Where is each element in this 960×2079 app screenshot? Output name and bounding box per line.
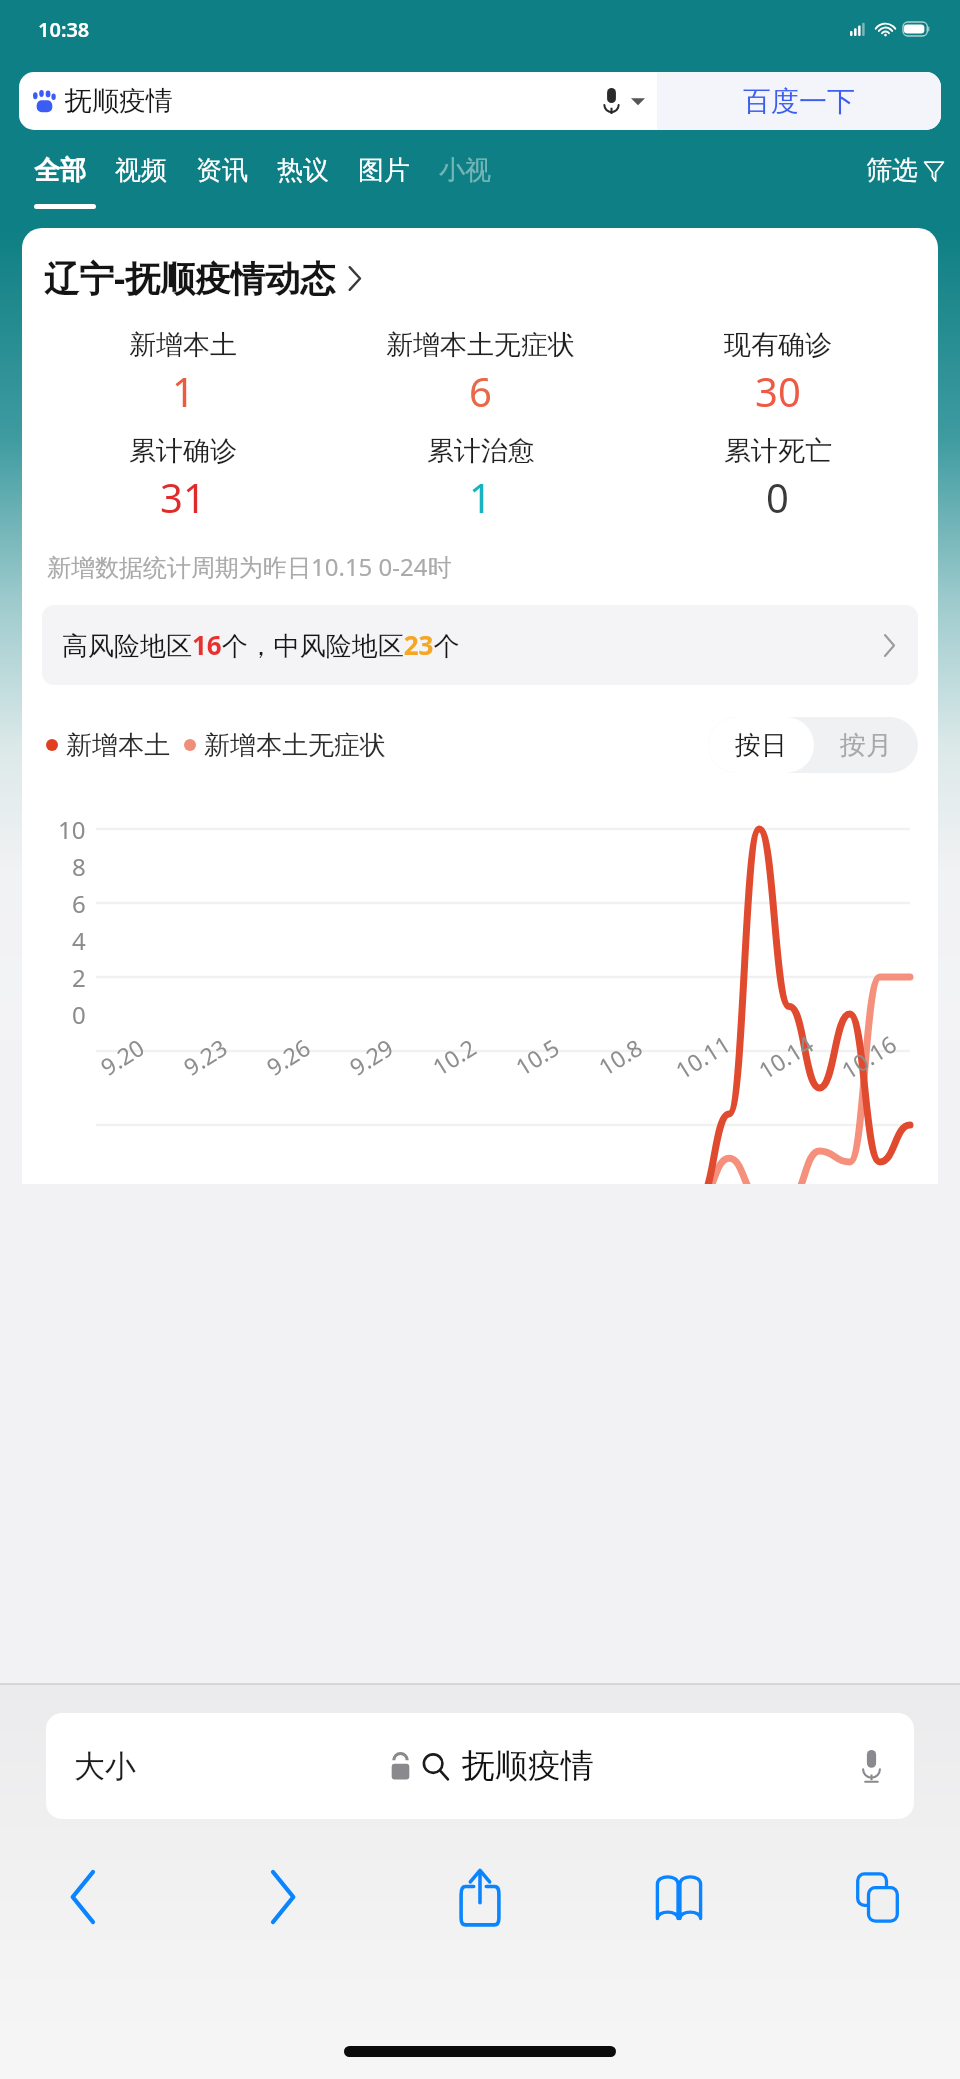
button[interactable]: 新增本土 — [34, 328, 332, 418]
button[interactable]: 语音输入 — [848, 1743, 894, 1789]
staticText: 2 — [72, 961, 86, 994]
staticText: 热议 — [277, 154, 329, 187]
button[interactable]: 按月 — [814, 717, 918, 773]
staticText: 按月 — [840, 729, 892, 762]
staticText: 10.8 — [592, 1031, 648, 1082]
staticText: 10.14 — [752, 1028, 819, 1085]
staticText: 抚顺疫情 — [65, 84, 173, 118]
button[interactable]: 后退 — [28, 1849, 138, 1945]
staticText: 10.11 — [669, 1028, 736, 1085]
staticText: 10.5 — [509, 1031, 565, 1082]
staticText: 视频 — [115, 154, 167, 187]
button[interactable]: 百度一下 — [657, 72, 941, 130]
staticText: 9.29 — [343, 1031, 399, 1082]
button[interactable]: 累计治愈 — [332, 434, 629, 524]
staticText: 1 — [469, 470, 492, 524]
staticText: 全部 — [34, 154, 86, 187]
staticText: 1 — [172, 364, 195, 418]
staticText: 0 — [72, 998, 86, 1031]
staticText: 高风险地区16个，中风险地区23个 — [62, 627, 460, 663]
staticText: 8 — [72, 850, 86, 883]
button[interactable]: 大小 — [74, 1747, 136, 1786]
staticText: 6 — [72, 887, 86, 920]
button[interactable]: 现有确诊 — [629, 328, 926, 418]
staticText: 新增数据统计周期为昨日10.15 0-24时 — [47, 550, 452, 583]
staticText: 10:38 — [38, 16, 90, 43]
staticText: 10 — [58, 813, 86, 846]
staticText: 图片 — [358, 154, 410, 187]
staticText: 新增本土无症状 — [386, 328, 575, 362]
staticText: 累计治愈 — [427, 434, 535, 468]
staticText: 9.20 — [94, 1031, 150, 1082]
staticText: 0 — [766, 470, 789, 524]
button[interactable]: 按日 — [708, 717, 814, 773]
button[interactable]: 累计死亡 — [629, 434, 926, 524]
staticText: 30 — [755, 364, 801, 418]
button[interactable]: 新增本土无症状 — [332, 328, 629, 418]
button[interactable]: 语音搜索 — [591, 81, 631, 121]
staticText: 累计死亡 — [724, 434, 832, 468]
staticText: 10.16 — [835, 1028, 902, 1085]
staticText: 资讯 — [196, 154, 248, 187]
staticText: 6 — [469, 364, 492, 418]
staticText: 4 — [72, 924, 86, 957]
staticText: 现有确诊 — [724, 328, 832, 362]
button[interactable]: 资讯 — [196, 154, 248, 187]
staticText: 累计确诊 — [129, 434, 237, 468]
staticText: 按日 — [735, 729, 787, 762]
button[interactable]: 书签 — [624, 1849, 734, 1945]
staticText: 抚顺疫情 — [462, 1745, 594, 1787]
staticText: 9.23 — [177, 1031, 233, 1082]
button[interactable]: 图片 — [358, 154, 410, 187]
button[interactable]: 大小 — [46, 1713, 914, 1819]
button[interactable]: 视频 — [115, 154, 167, 187]
staticText: 新增本土无症状 — [204, 729, 386, 762]
staticText: 新增本土 — [129, 328, 237, 362]
staticText: 筛选 — [866, 154, 918, 187]
button[interactable]: 热议 — [277, 154, 329, 187]
button[interactable]: 小视 — [439, 154, 491, 187]
button[interactable]: 累计确诊 — [34, 434, 332, 524]
button[interactable]: 分享 — [425, 1849, 535, 1945]
button[interactable]: 前进 — [227, 1849, 337, 1945]
staticText: 新增本土 — [66, 729, 170, 762]
staticText: 百度一下 — [743, 84, 855, 119]
button[interactable]: 全部 — [34, 154, 86, 187]
button[interactable]: 抚顺疫情 — [19, 72, 941, 130]
staticText: 小视 — [439, 154, 491, 187]
staticText: 9.26 — [260, 1031, 316, 1082]
button[interactable]: 辽宁-抚顺疫情动态 — [44, 254, 362, 302]
button[interactable]: 标签页 — [822, 1849, 932, 1945]
staticText: 31 — [160, 470, 206, 524]
staticText: 辽宁-抚顺疫情动态 — [44, 254, 336, 302]
staticText: 10.2 — [426, 1031, 482, 1082]
button[interactable]: 筛选 — [866, 154, 944, 187]
button[interactable]: 高风险地区16个，中风险地区23个 — [42, 605, 918, 685]
